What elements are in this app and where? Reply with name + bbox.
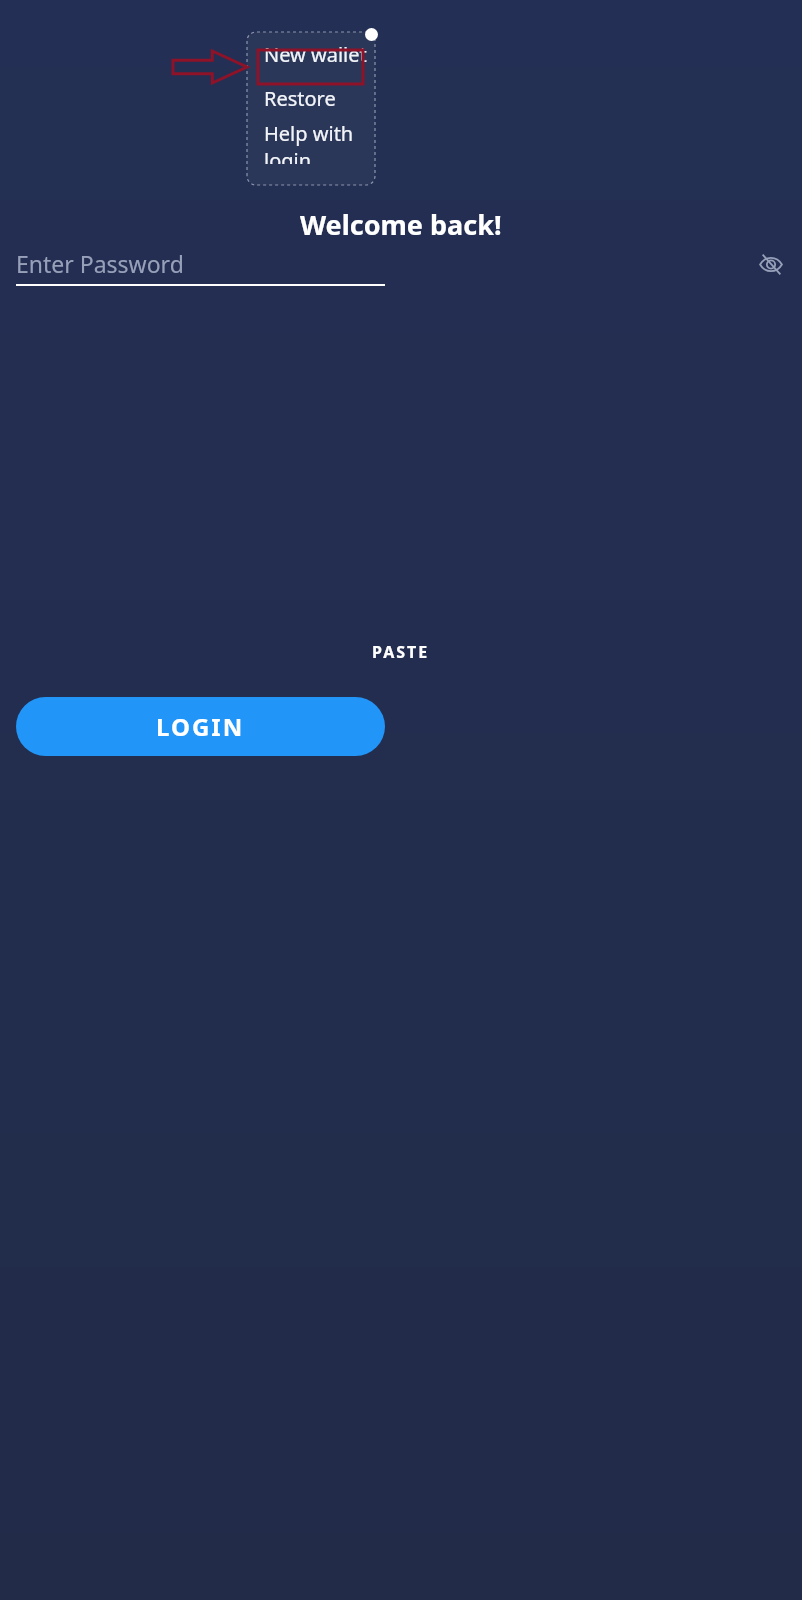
button[interactable]: Enter Password: [0, 248, 802, 290]
button[interactable]: Show password: [756, 249, 786, 279]
button[interactable]: Help with login: [247, 120, 375, 164]
staticText: LOGIN: [156, 710, 245, 743]
staticText: Help with login: [264, 120, 375, 164]
button[interactable]: Restore: [247, 76, 375, 120]
staticText: New wallet: [264, 41, 367, 68]
staticText: Welcome back!: [300, 206, 502, 243]
staticText: Restore: [264, 85, 336, 112]
staticText: PASTE: [372, 641, 430, 663]
button[interactable]: PASTE: [360, 637, 442, 667]
staticText: Enter Password: [16, 248, 184, 279]
button[interactable]: LOGIN: [16, 697, 385, 756]
button[interactable]: New wallet: [247, 32, 375, 76]
